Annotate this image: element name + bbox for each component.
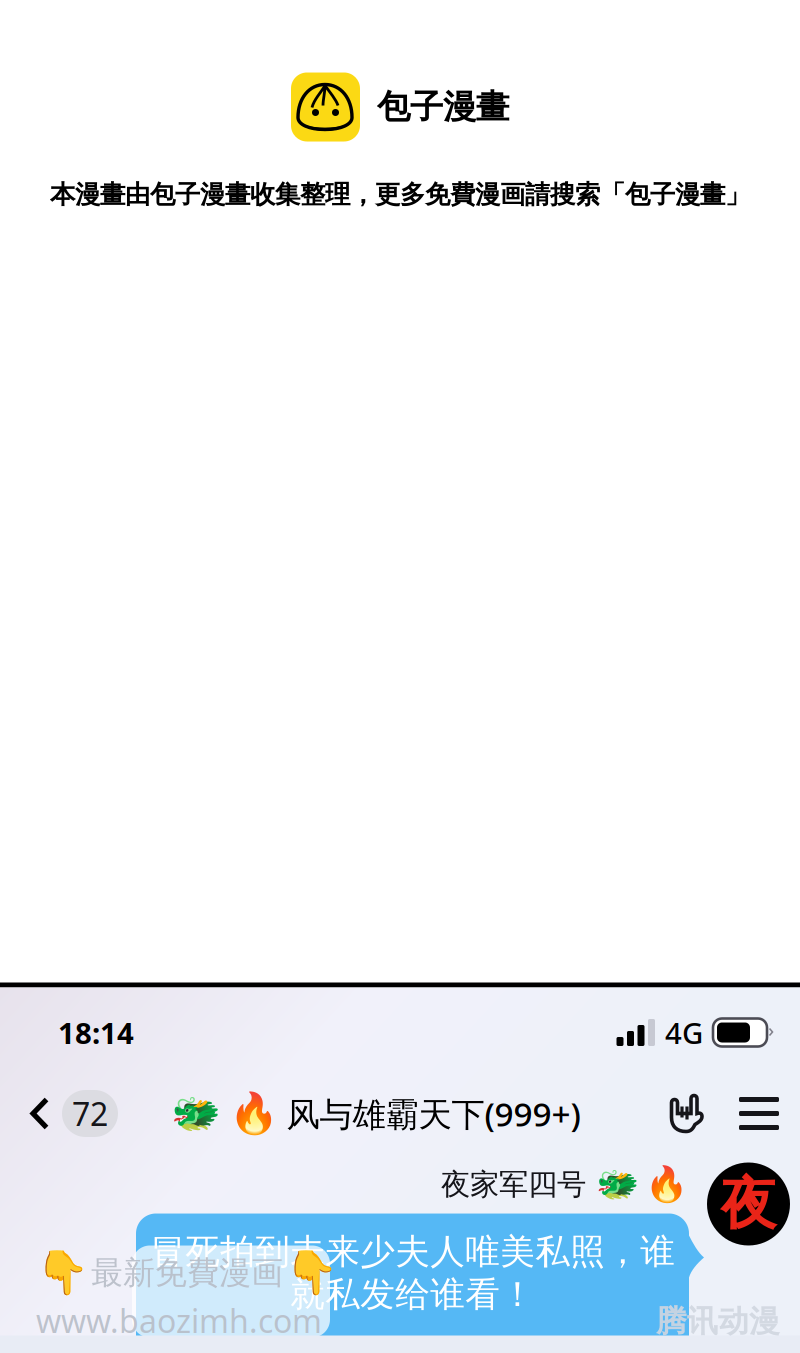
staticText: 风与雄霸天下(999+) bbox=[286, 1091, 580, 1136]
staticText: 18:14 bbox=[58, 1013, 134, 1052]
staticText: 本漫畫由包子漫畫收集整理，更多免費漫画請搜索「包子漫畫」 bbox=[50, 179, 750, 210]
staticText: 4G bbox=[665, 1013, 703, 1052]
staticText: 72 bbox=[72, 1092, 108, 1135]
staticText: www.baozimh.com bbox=[36, 1299, 322, 1342]
staticText: 最新免費漫画 bbox=[91, 1253, 283, 1292]
staticText: 👇 bbox=[36, 1248, 89, 1297]
staticText: 🔥 bbox=[228, 1091, 278, 1136]
button[interactable]: Gesture bbox=[669, 1093, 707, 1133]
staticText: 👇 bbox=[285, 1248, 338, 1297]
button[interactable]: Menu bbox=[707, 1097, 779, 1130]
staticText: 🔥 bbox=[645, 1165, 688, 1204]
staticText: 冒死拍到未来少夫人唯美私照，谁 就私发给谁看！ bbox=[150, 1230, 675, 1316]
staticText: 包子漫畫 bbox=[377, 86, 509, 127]
staticText: 🐲 bbox=[596, 1165, 639, 1204]
staticText: 🐲 bbox=[170, 1091, 220, 1136]
staticText: 腾讯动漫 bbox=[656, 1302, 780, 1340]
staticText: 夜 bbox=[720, 1170, 776, 1238]
button[interactable]: 72 bbox=[29, 1090, 118, 1137]
staticText: 夜家军四号 bbox=[441, 1166, 586, 1202]
